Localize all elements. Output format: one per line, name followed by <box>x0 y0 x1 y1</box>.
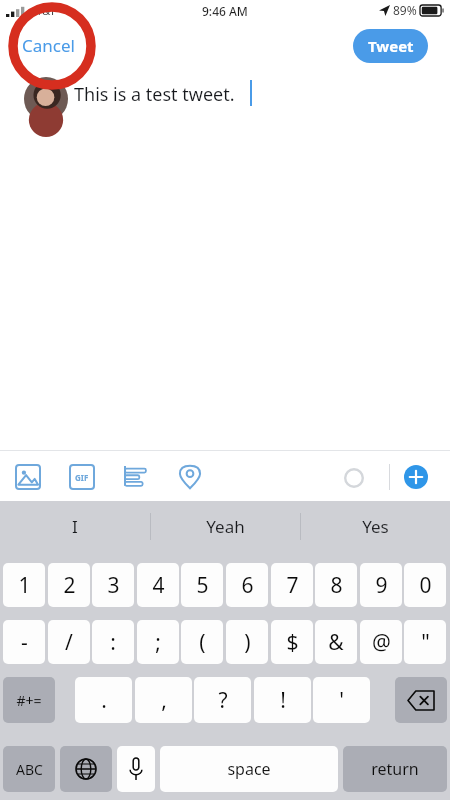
staticText: 2 <box>63 571 76 600</box>
staticText: ? <box>218 686 228 715</box>
button[interactable]: ? <box>194 677 251 723</box>
staticText: space <box>227 758 271 780</box>
staticText: 3 <box>107 571 120 600</box>
staticText: GIF <box>75 472 89 483</box>
staticText: , <box>161 686 167 715</box>
staticText: 4 <box>152 571 165 600</box>
staticText: ; <box>155 628 161 657</box>
button[interactable]: Yeah <box>150 501 300 552</box>
button[interactable]: Change keyboard <box>60 746 112 792</box>
button[interactable]: - <box>3 620 45 664</box>
button[interactable]: : <box>92 620 134 664</box>
button[interactable]: $ <box>271 620 313 664</box>
button[interactable]: I <box>0 501 150 552</box>
staticText: AT&T <box>30 3 56 18</box>
staticText: ' <box>339 686 344 715</box>
button[interactable]: Tweet <box>353 29 428 63</box>
staticText: 0 <box>419 571 432 600</box>
staticText: . <box>101 686 107 715</box>
staticText: & <box>328 628 344 657</box>
button[interactable]: 7 <box>271 563 313 607</box>
staticText: @ <box>372 628 391 657</box>
staticText: $ <box>286 628 299 657</box>
button[interactable]: @ <box>360 620 402 664</box>
button[interactable]: 9 <box>360 563 402 607</box>
button[interactable]: , <box>135 677 192 723</box>
staticText: This is a test tweet. <box>74 82 235 107</box>
button[interactable]: 4 <box>137 563 179 607</box>
button[interactable]: Add GIF <box>68 463 96 491</box>
button[interactable]: 3 <box>92 563 134 607</box>
staticText: ! <box>280 686 286 715</box>
staticText: 6 <box>241 571 254 600</box>
staticText: #+= <box>16 691 42 710</box>
staticText: ( <box>199 628 206 657</box>
staticText: Yes <box>362 515 389 538</box>
staticText: ) <box>244 628 251 657</box>
button[interactable]: 5 <box>181 563 223 607</box>
staticText: I <box>72 515 78 538</box>
button[interactable]: 6 <box>226 563 268 607</box>
button[interactable]: / <box>48 620 90 664</box>
button[interactable]: ABC <box>3 746 55 792</box>
staticText: 9:46 AM <box>202 3 248 19</box>
button[interactable]: ; <box>137 620 179 664</box>
button[interactable]: ) <box>226 620 268 664</box>
staticText: / <box>65 628 73 657</box>
button[interactable]: Voice input <box>117 746 155 792</box>
staticText: Cancel <box>22 34 75 57</box>
staticText: : <box>110 628 116 657</box>
button[interactable]: space <box>160 746 338 792</box>
button[interactable]: ! <box>254 677 311 723</box>
staticText: 5 <box>196 571 209 600</box>
button[interactable]: Add location <box>176 463 204 491</box>
button[interactable]: ( <box>181 620 223 664</box>
staticText: Yeah <box>206 515 245 538</box>
button[interactable]: 1 <box>3 563 45 607</box>
button[interactable]: Add tweet <box>404 465 428 489</box>
staticText: 7 <box>286 571 299 600</box>
staticText: Tweet <box>368 36 414 56</box>
staticText: " <box>421 628 430 657</box>
button[interactable]: Add poll <box>122 463 150 491</box>
button[interactable]: & <box>315 620 357 664</box>
button[interactable]: Backspace <box>395 677 447 723</box>
staticText: return <box>371 758 419 780</box>
button[interactable]: 0 <box>404 563 446 607</box>
button[interactable]: ' <box>313 677 370 723</box>
button[interactable]: return <box>343 746 447 792</box>
staticText: 1 <box>18 571 31 600</box>
staticText: ABC <box>16 760 43 779</box>
button[interactable]: Yes <box>300 501 450 552</box>
staticText: 9 <box>375 571 388 600</box>
staticText: 8 <box>330 571 343 600</box>
button[interactable]: Cancel <box>18 32 79 59</box>
staticText: 89% <box>393 2 417 18</box>
button[interactable]: #+= <box>3 677 55 723</box>
button[interactable]: 2 <box>48 563 90 607</box>
staticText: - <box>21 628 28 657</box>
button[interactable]: Add photo <box>14 463 42 491</box>
button[interactable]: 8 <box>315 563 357 607</box>
button[interactable]: . <box>75 677 132 723</box>
button[interactable]: " <box>404 620 446 664</box>
